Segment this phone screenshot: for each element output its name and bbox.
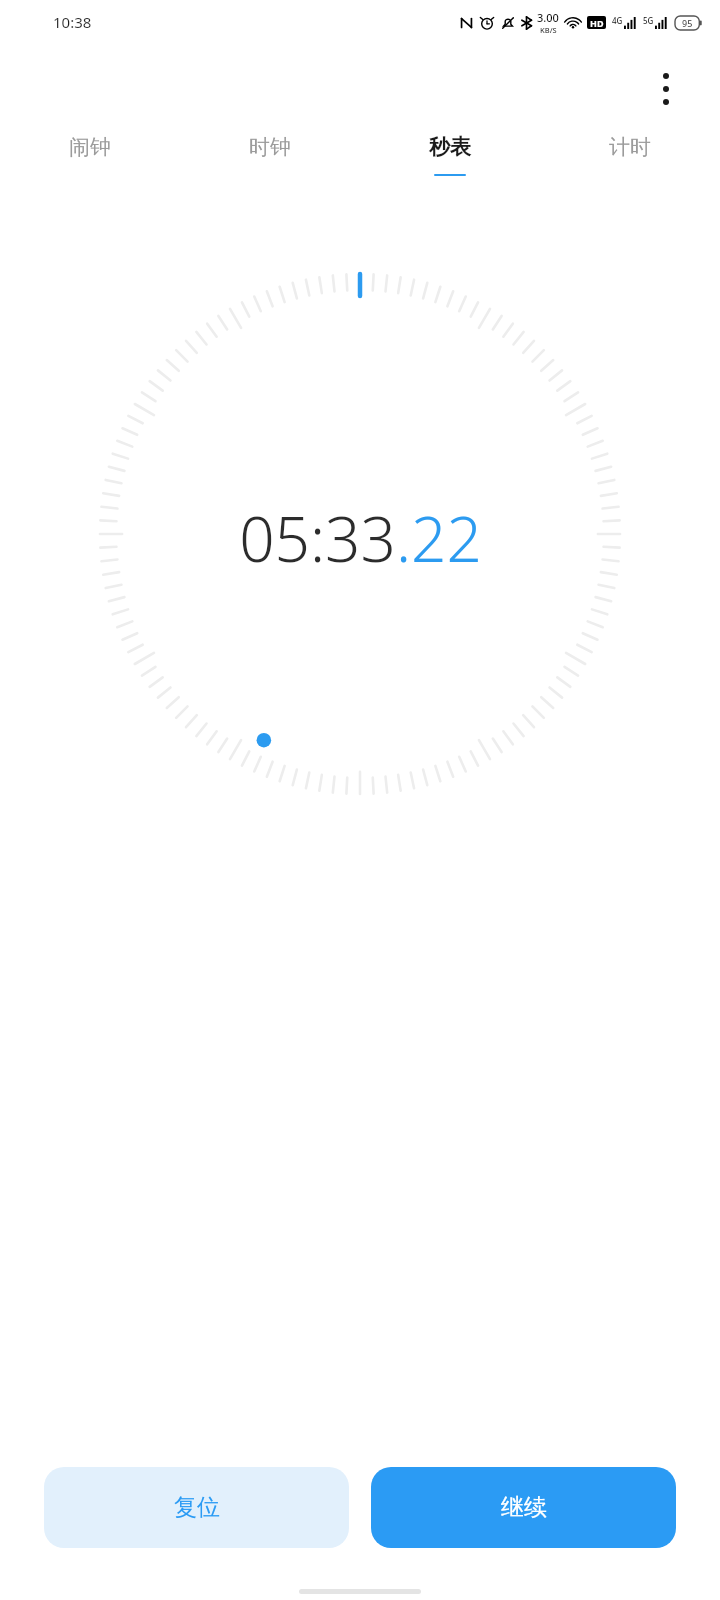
staticText: 计时 — [609, 134, 651, 160]
staticText: 05:33.22 — [239, 496, 482, 580]
staticText: 继续 — [501, 1493, 547, 1522]
button[interactable]: 复位 — [44, 1467, 349, 1548]
button[interactable]: 继续 — [371, 1467, 676, 1548]
button[interactable]: 时钟 — [180, 134, 360, 212]
staticText: 10:38 — [53, 12, 92, 32]
button[interactable]: 闹钟 — [0, 134, 180, 212]
staticText: KB/S — [540, 25, 557, 35]
staticText: 闹钟 — [69, 134, 111, 160]
staticText: 95 — [682, 17, 693, 29]
staticText: 4G — [612, 15, 623, 26]
button[interactable]: 计时 — [540, 134, 720, 212]
button[interactable]: 秒表 — [360, 134, 540, 212]
staticText: 5G — [643, 15, 654, 26]
staticText: 复位 — [174, 1493, 220, 1522]
button[interactable]: More options — [642, 65, 690, 113]
staticText: 秒表 — [429, 134, 471, 160]
staticText: HD — [590, 17, 604, 29]
staticText: 3.00 — [537, 10, 559, 25]
staticText: 时钟 — [249, 134, 291, 160]
